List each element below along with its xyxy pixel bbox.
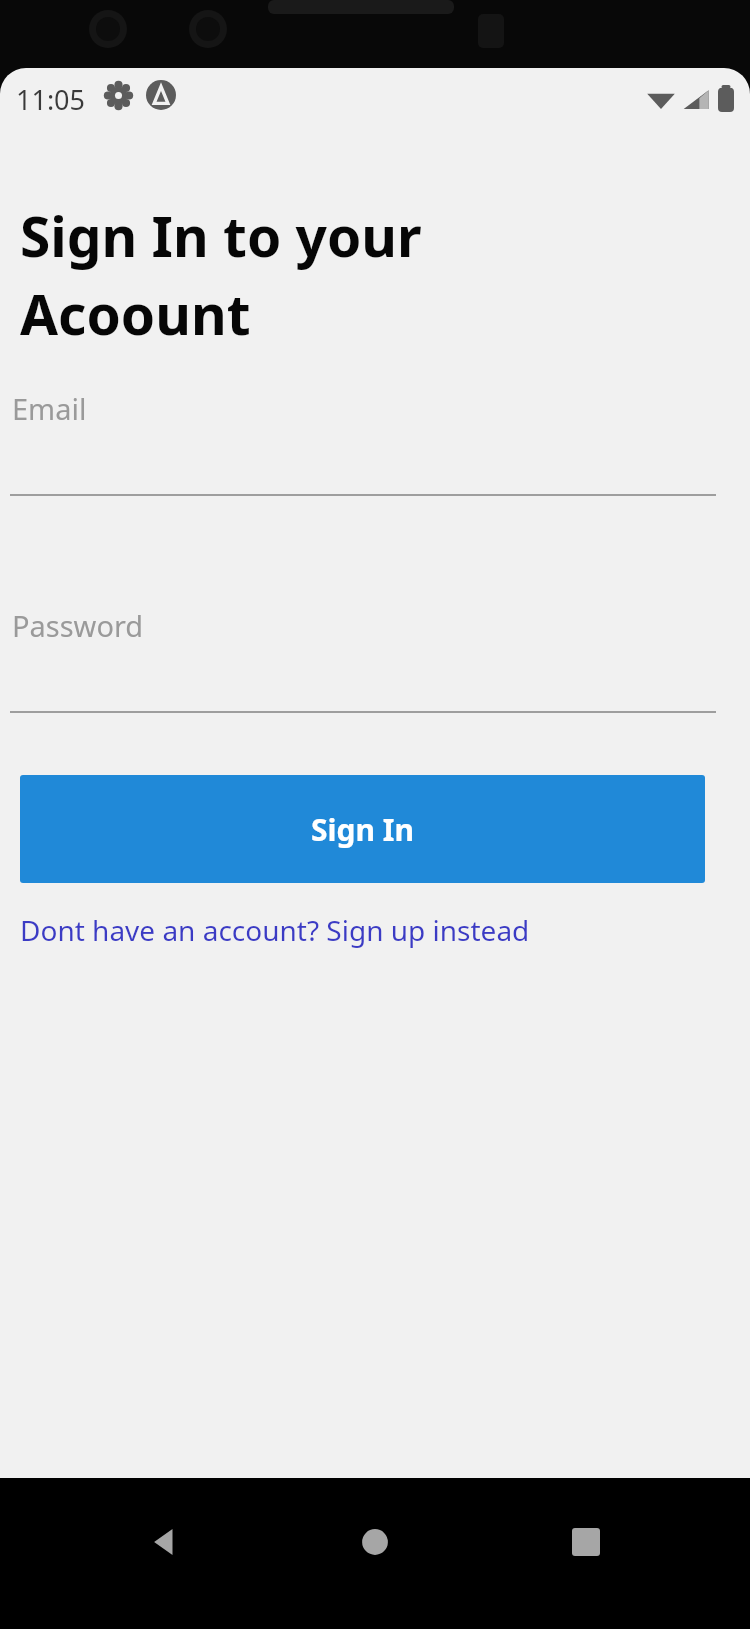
button[interactable]: Back [119,1496,211,1588]
button[interactable]: Recent apps [540,1496,632,1588]
staticText: Sign In to your Acoount [20,198,422,351]
staticText: Sign In [311,809,414,850]
staticText: Dont have an account? Sign up instead [20,911,530,949]
button[interactable]: Email [0,389,750,496]
button[interactable]: Home [329,1496,421,1588]
button[interactable]: Password [0,606,750,713]
staticText: Email [12,389,87,428]
button[interactable]: Sign In [20,775,705,883]
button[interactable]: Dont have an account? Sign up instead [20,905,530,955]
staticText: 11:05 [16,81,86,118]
staticText: Password [12,606,144,645]
